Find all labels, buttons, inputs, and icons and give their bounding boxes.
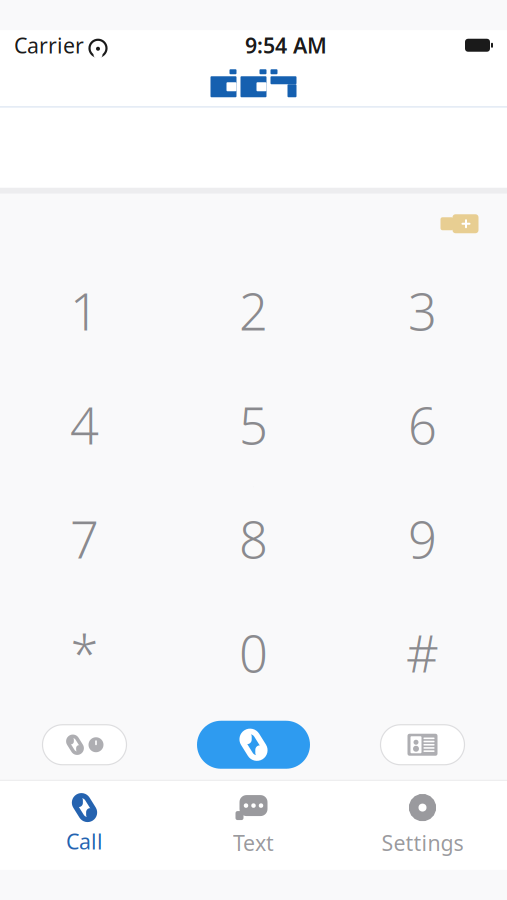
staticText: 8 <box>239 505 268 572</box>
button[interactable]: Text <box>169 787 338 863</box>
staticText: 4 <box>70 391 99 458</box>
button[interactable]: 1 <box>0 254 169 368</box>
staticText: 5 <box>239 391 268 458</box>
staticText: Text <box>233 829 274 857</box>
staticText: Settings <box>381 829 463 857</box>
button[interactable]: Call <box>0 787 169 863</box>
staticText: 1 <box>70 277 99 344</box>
staticText: Carrier <box>14 31 84 59</box>
button[interactable]: 8 <box>169 482 338 596</box>
staticText: 9 <box>408 505 437 572</box>
staticText: 0 <box>239 619 268 686</box>
button[interactable]: 6 <box>338 368 507 482</box>
button[interactable]: Recent calls <box>42 725 126 765</box>
button[interactable]: * <box>0 596 169 710</box>
button[interactable]: # <box>338 596 507 710</box>
button[interactable]: 3 <box>338 254 507 368</box>
staticText: 7 <box>70 505 99 572</box>
staticText: 3 <box>408 277 437 344</box>
staticText: Call <box>66 827 103 855</box>
staticText: * <box>70 619 98 686</box>
button[interactable]: Settings <box>338 787 507 863</box>
button[interactable]: Delete <box>433 207 487 241</box>
button[interactable]: 7 <box>0 482 169 596</box>
button[interactable]: 2 <box>169 254 338 368</box>
button[interactable]: 5 <box>169 368 338 482</box>
staticText: 9:54 AM <box>245 31 327 59</box>
button[interactable]: Call <box>197 721 310 769</box>
staticText: 2 <box>239 277 268 344</box>
button[interactable]: 0 <box>169 596 338 710</box>
button[interactable]: Contacts <box>380 725 464 765</box>
button[interactable]: 9 <box>338 482 507 596</box>
staticText: 6 <box>408 391 437 458</box>
button[interactable]: 4 <box>0 368 169 482</box>
staticText: # <box>406 619 439 686</box>
